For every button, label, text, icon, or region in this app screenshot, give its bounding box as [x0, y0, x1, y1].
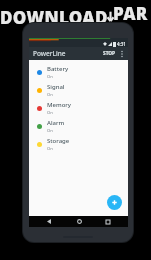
staticText: On — [47, 92, 53, 98]
staticText: Alarm — [47, 119, 65, 127]
button[interactable]: Back — [39, 216, 59, 227]
staticText: DOWNLOAD — [0, 6, 108, 29]
button[interactable]: STOP — [101, 49, 118, 58]
staticText: Memory — [47, 101, 72, 109]
staticText: PowerLine — [33, 49, 66, 58]
staticText: On — [47, 74, 53, 80]
staticText: Battery — [47, 65, 69, 73]
staticText: Storage — [47, 137, 70, 145]
button[interactable]: More options — [118, 47, 126, 60]
button[interactable]: Alarm — [29, 117, 128, 135]
button[interactable]: Signal — [29, 81, 128, 99]
staticText: STOP — [103, 50, 116, 57]
staticText: PARK — [113, 2, 151, 32]
button[interactable]: Storage — [29, 135, 128, 153]
staticText: 4:31 — [117, 41, 126, 47]
button[interactable]: Memory — [29, 99, 128, 117]
staticText: Signal — [47, 83, 65, 91]
button[interactable]: Add — [107, 195, 122, 210]
button[interactable]: Battery — [29, 63, 128, 81]
button[interactable]: Recent apps — [98, 216, 118, 227]
button[interactable]: Home — [69, 216, 89, 227]
staticText: On — [47, 110, 53, 116]
staticText: On — [47, 128, 53, 134]
staticText: On — [47, 146, 53, 152]
